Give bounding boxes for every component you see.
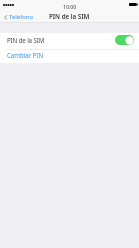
other: Bateria (129, 3, 138, 6)
staticText: Teléfono (9, 13, 34, 21)
staticText: PIN de la SIM (49, 12, 90, 21)
button[interactable]: Teléfono (0, 12, 38, 22)
other: Cobertura (3, 4, 14, 6)
button[interactable]: Cambiar PIN (0, 50, 139, 63)
button[interactable]: PIN de la SIM (0, 33, 139, 49)
staticText: PIN de la SIM (7, 36, 45, 44)
staticText: Cambiar PIN (7, 51, 44, 59)
staticText: 10:00 (63, 3, 77, 10)
button[interactable]: Activar PIN de la SIM (115, 35, 134, 45)
